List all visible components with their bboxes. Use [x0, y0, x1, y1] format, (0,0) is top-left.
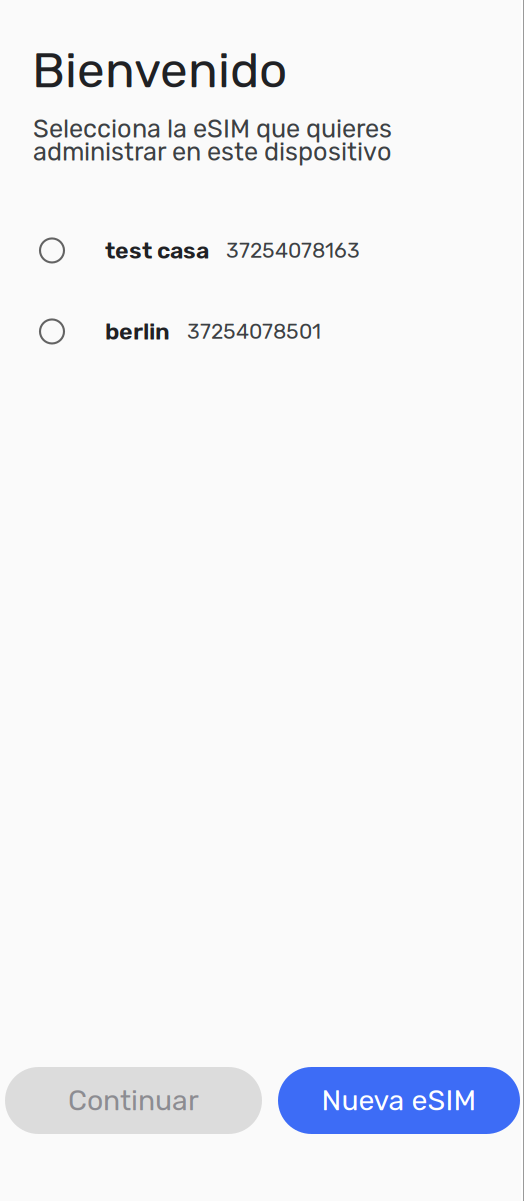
staticText: berlin: [105, 318, 170, 345]
staticText: test casa: [105, 237, 209, 264]
button[interactable]: berlin: [0, 303, 524, 359]
staticText: 37254078163: [226, 238, 360, 263]
button[interactable]: Continuar: [5, 1067, 262, 1134]
staticText: Bienvenido: [32, 41, 287, 99]
staticText: Selecciona la eSIM que quieres: [33, 114, 392, 144]
staticText: administrar en este dispositivo: [33, 137, 392, 167]
staticText: Nueva eSIM: [321, 1084, 476, 1117]
staticText: 37254078501: [187, 319, 321, 344]
button[interactable]: test casa: [0, 222, 524, 278]
button[interactable]: Nueva eSIM: [278, 1067, 520, 1134]
staticText: Continuar: [68, 1084, 199, 1117]
